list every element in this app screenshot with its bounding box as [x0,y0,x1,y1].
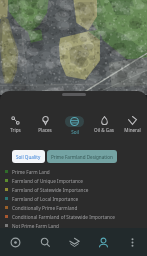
button[interactable]: Mineral [118,116,147,136]
staticText: Farmland of Local Importance [12,196,79,202]
staticText: Oil & Gas [94,127,114,133]
button[interactable]: Conditionally Prime Farmland [0,203,147,212]
staticText: Soil [71,129,79,135]
staticText: Farmland of Unique Importance [12,178,83,184]
button[interactable]: Trips [0,116,30,136]
staticText: Mineral [124,127,141,133]
button[interactable]: Prime Farmland Designation [47,150,117,163]
staticText: Places [38,127,52,133]
button[interactable]: Oil & Gas [89,116,118,136]
staticText: Farmland of Statewide Importance [12,187,89,193]
staticText: Conditionally Prime Farmland [12,205,78,211]
staticText: Soil Quality [16,154,41,160]
staticText: Prime Farmland Designation [51,154,113,160]
button[interactable]: Soil [60,116,89,136]
button[interactable]: Prime Farm Land [0,167,147,176]
button[interactable]: Profile [89,228,118,256]
button[interactable]: Places [30,116,60,136]
button[interactable]: Farmland of Local Importance [0,194,147,203]
button[interactable]: Layers [60,228,89,256]
staticText: Not Prime Farm Land [12,223,60,228]
button[interactable]: More [118,228,147,256]
button[interactable]: Soil Quality [12,150,45,163]
staticText: Prime Farm Land [12,169,50,175]
button[interactable]: Map [0,228,30,256]
button[interactable]: Farmland of Unique Importance [0,176,147,185]
button[interactable]: Not Prime Farm Land [0,221,147,228]
staticText: Trips [10,127,21,133]
button[interactable]: Farmland of Statewide Importance [0,185,147,194]
staticText: Conditional Farmland of Statewide Import… [12,214,115,220]
button[interactable]: Search [30,228,60,256]
button[interactable]: Conditional Farmland of Statewide Import… [0,212,147,221]
